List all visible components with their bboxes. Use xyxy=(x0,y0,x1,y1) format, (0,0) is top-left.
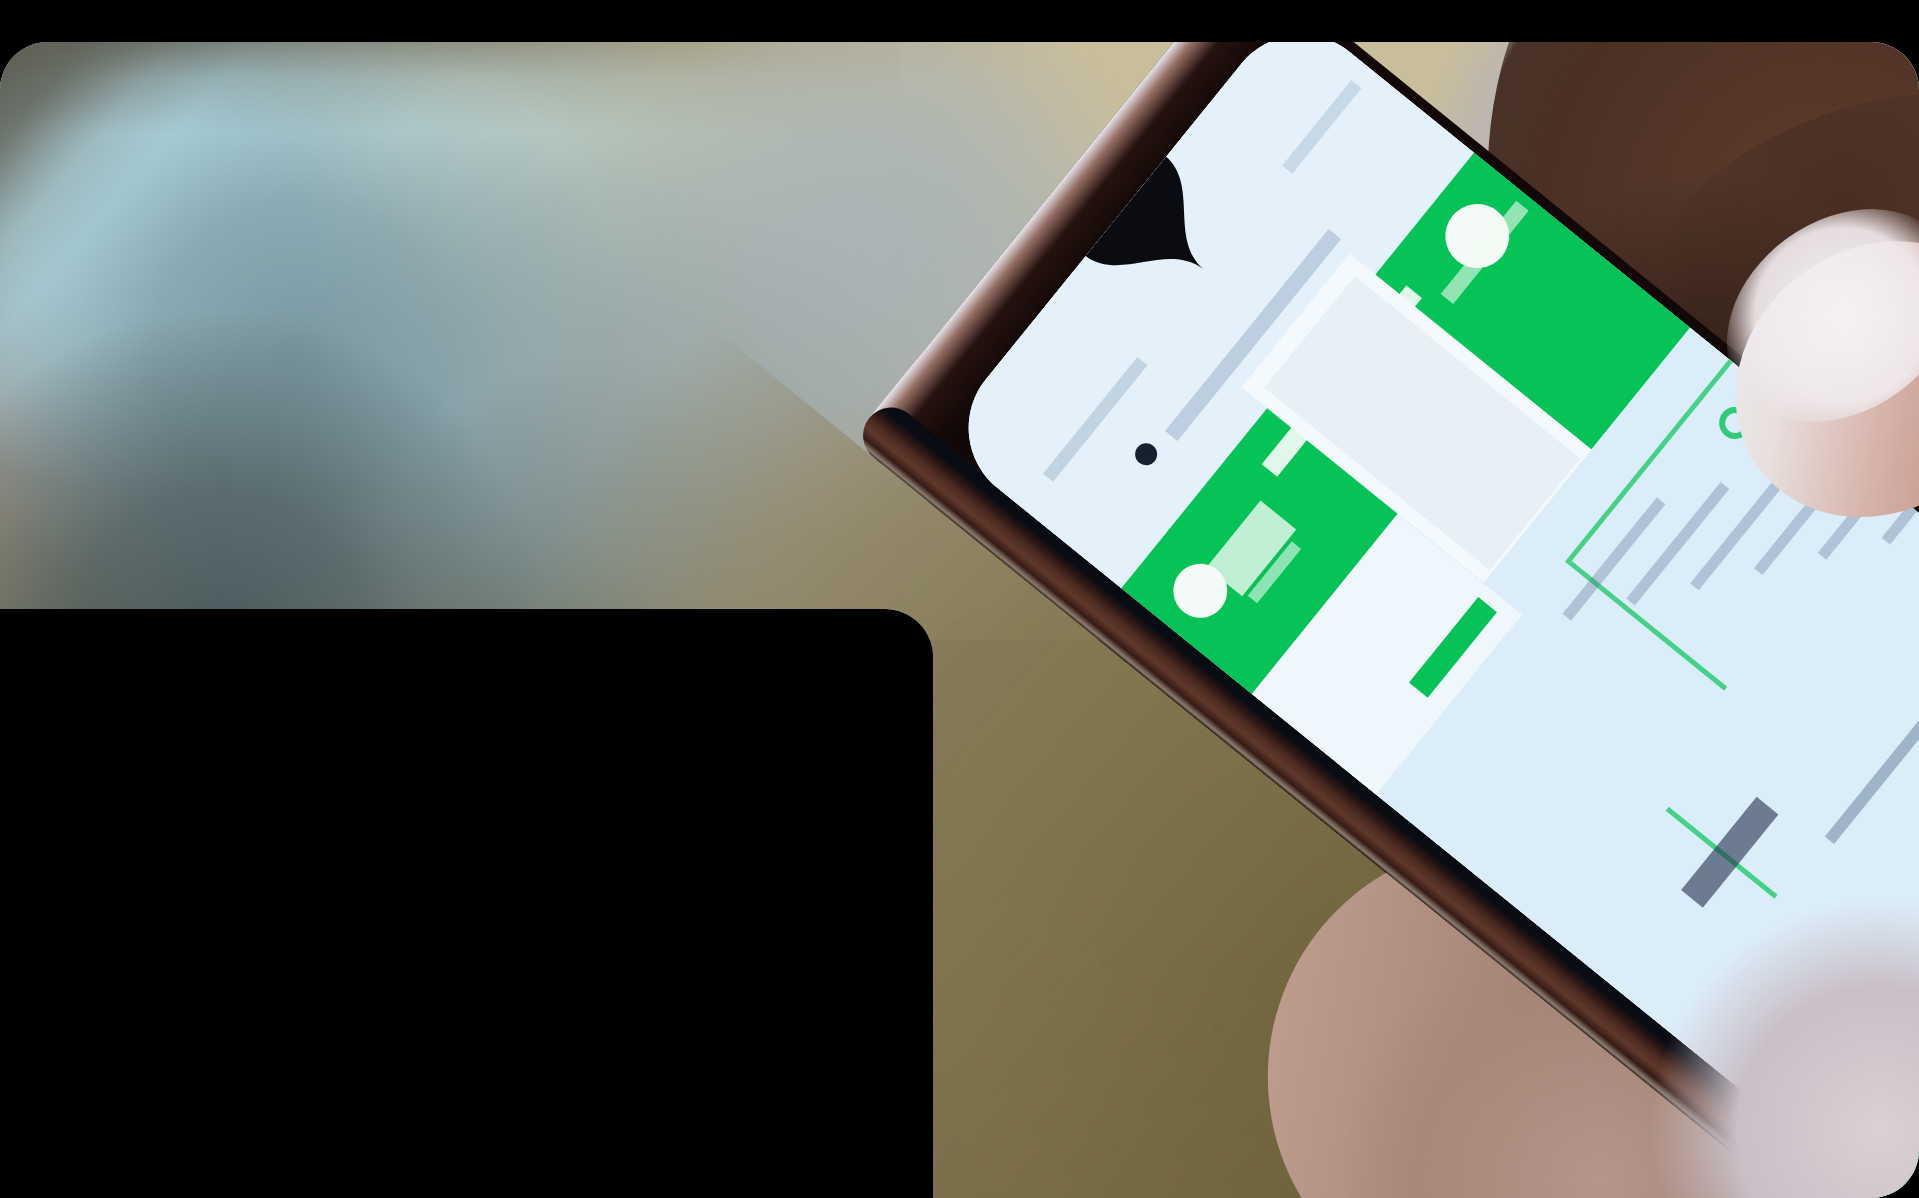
button[interactable]: Hand holding a phone showing the app xyxy=(0,0,1919,1198)
